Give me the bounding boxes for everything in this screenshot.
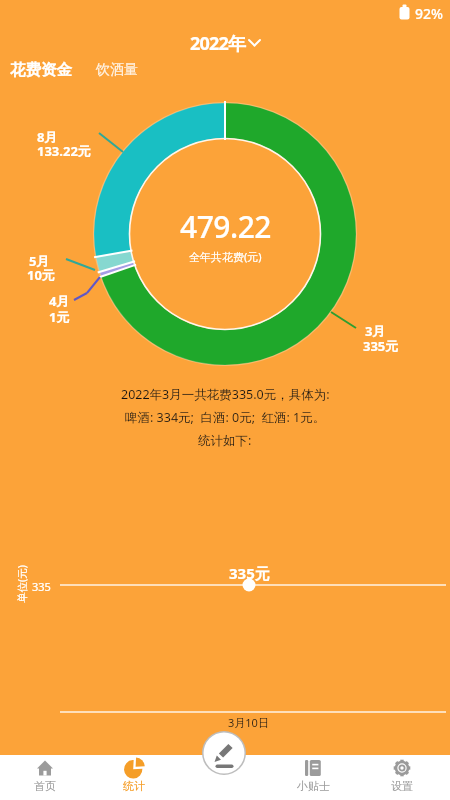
staticText: 133.22元 bbox=[37, 142, 91, 160]
staticText: 设置 bbox=[391, 779, 413, 793]
button[interactable]: 统计 bbox=[113, 755, 155, 800]
staticText: 3月10日 bbox=[228, 715, 269, 730]
staticText: 4月 bbox=[49, 292, 70, 310]
staticText: 统计 bbox=[123, 779, 145, 793]
staticText: 全年共花费(元) bbox=[189, 249, 262, 264]
staticText: 92% bbox=[415, 4, 443, 23]
staticText: 479.22 bbox=[180, 206, 271, 247]
staticText: 10元 bbox=[27, 266, 55, 284]
staticText: 2022年3月一共花费335.0元，具体为: bbox=[121, 386, 330, 403]
staticText: 统计如下: bbox=[198, 432, 252, 449]
staticText: 3月 bbox=[365, 322, 386, 340]
button[interactable]: 2022年 bbox=[190, 31, 246, 56]
staticText: 335元 bbox=[363, 337, 399, 355]
button[interactable]: 花费资金 bbox=[10, 60, 72, 80]
staticText: 1元 bbox=[49, 308, 70, 326]
button[interactable]: 小贴士 bbox=[292, 755, 334, 800]
button[interactable]: 首页 bbox=[24, 755, 66, 800]
staticText: 335 bbox=[32, 579, 51, 594]
staticText: 335元 bbox=[229, 563, 270, 583]
button[interactable] bbox=[202, 731, 246, 775]
button[interactable]: 饮酒量 bbox=[96, 61, 138, 79]
staticText: 5月 bbox=[29, 252, 50, 270]
staticText: 小贴士 bbox=[297, 779, 330, 793]
staticText: 8月 bbox=[37, 128, 58, 146]
staticText: 单位(元) bbox=[15, 565, 29, 603]
staticText: 首页 bbox=[34, 779, 56, 793]
button[interactable]: 设置 bbox=[381, 755, 423, 800]
staticText: 啤酒: 334元; 白酒: 0元; 红酒: 1元。 bbox=[125, 409, 326, 426]
